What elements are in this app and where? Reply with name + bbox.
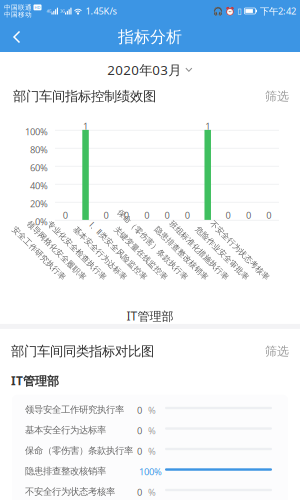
staticText: 0 — [144, 209, 149, 221]
staticText: 80% — [30, 143, 48, 156]
button[interactable]: 筛选 — [253, 86, 289, 107]
button[interactable]: 筛选 — [253, 341, 289, 362]
button[interactable]: 不安全行为状态考核率 — [12, 480, 288, 500]
staticText: 关键变量在线监控率 — [97, 275, 169, 285]
staticText: 领导网格化安全履职率 — [7, 275, 87, 285]
staticText: 不安全行为状态考核率 — [25, 486, 115, 497]
staticText: HD — [34, 5, 40, 10]
staticText: 基本安全行为达标率 — [25, 424, 106, 436]
staticText: 筛选 — [265, 89, 289, 104]
staticText: 100% — [139, 465, 162, 478]
staticText: 0 — [266, 209, 271, 221]
staticText: 保命（零伤害）条款执行率 — [93, 275, 189, 285]
staticText: 1.45K/s — [85, 5, 116, 17]
staticText: 基本安全行为达标率 — [56, 275, 128, 285]
staticText: 4G — [46, 8, 51, 14]
staticText: 隐患排查整改核销率 — [25, 465, 106, 477]
staticText: 中国联通 — [4, 3, 32, 11]
staticText: 🎧 — [213, 6, 223, 15]
staticText: 0 — [185, 209, 190, 221]
staticText: 班组标准化措施执行率 — [150, 275, 230, 285]
button[interactable]: 基本安全行为达标率 — [12, 418, 288, 439]
staticText: 安全工作研究执行率 — [0, 275, 67, 285]
staticText: 0 — [137, 445, 142, 457]
staticText: 0 — [103, 209, 108, 221]
button[interactable]: 2020年03月 — [99, 56, 201, 84]
staticText: % — [148, 424, 156, 437]
staticText: IT管理部 — [11, 373, 59, 389]
staticText: % — [148, 486, 156, 498]
staticText: 1 — [83, 120, 88, 132]
button[interactable]: 保命（零伤害）条款执行率 — [12, 439, 288, 459]
staticText: 0 — [137, 404, 142, 416]
staticText: 领导安全工作研究执行率 — [25, 404, 124, 415]
staticText: ▯ — [237, 6, 241, 16]
staticText: 部门车间指标控制绩效图 — [13, 88, 156, 104]
staticText: 部门车间同类指标对比图 — [11, 343, 154, 359]
button[interactable]: 隐患排查整改核销率 — [12, 459, 288, 480]
staticText: 0 — [137, 486, 142, 498]
staticText: 0 — [137, 424, 142, 437]
button[interactable]: 领导安全工作研究执行率 — [12, 398, 288, 418]
staticText: 100% — [25, 125, 48, 138]
staticText: 60% — [30, 161, 48, 174]
staticText: ⏰ — [225, 6, 235, 15]
staticText: 不安全行为状态考核率 — [191, 275, 271, 285]
staticText: 保命（零伤害）条款执行率 — [25, 445, 133, 456]
staticText: 0 — [164, 209, 169, 221]
staticText: 2020年03月 — [107, 61, 181, 79]
staticText: 指标分析 — [118, 27, 182, 47]
staticText: 20% — [30, 197, 48, 210]
staticText: Ⅰ、Ⅱ类安全风险监控率 — [71, 275, 149, 285]
staticText: 0 — [63, 209, 68, 221]
staticText: 0 — [226, 209, 231, 221]
staticText: 0 — [124, 209, 129, 221]
staticText: 筛选 — [265, 344, 289, 359]
staticText: IT管理部 — [126, 308, 173, 324]
staticText: 40% — [30, 179, 48, 192]
staticText: 危险作业安全审批率 — [178, 275, 250, 285]
staticText: 1 — [205, 120, 210, 132]
staticText: 专业化安全检查执行率 — [28, 275, 108, 285]
staticText: 隐患排查整改核销率 — [138, 275, 210, 285]
button[interactable]: 返回 — [0, 22, 33, 52]
staticText: 中国移动 — [4, 10, 32, 19]
staticText: 0 — [246, 209, 251, 221]
staticText: % — [148, 445, 156, 457]
staticText: 下午2:42 — [260, 5, 296, 17]
staticText: % — [148, 404, 156, 416]
staticText: 0% — [35, 215, 48, 228]
staticText: 3G — [60, 8, 65, 14]
